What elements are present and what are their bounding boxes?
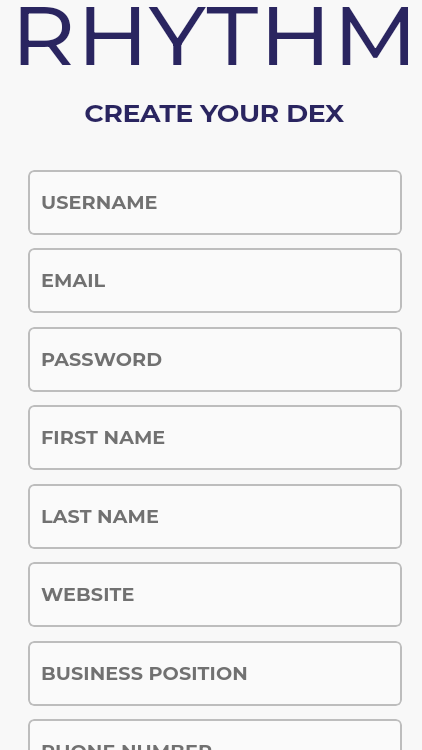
staticText: WEBSITE <box>41 584 135 606</box>
staticText: RHYTHM <box>11 0 419 86</box>
button[interactable]: USERNAME <box>28 170 402 235</box>
staticText: PASSWORD <box>41 349 163 371</box>
button[interactable]: PHONE NUMBER <box>28 719 402 750</box>
button[interactable]: LAST NAME <box>28 484 402 549</box>
button[interactable]: EMAIL <box>28 248 402 313</box>
staticText: EMAIL <box>41 270 106 292</box>
staticText: BUSINESS POSITION <box>41 663 248 685</box>
staticText: CREATE YOUR DEX <box>84 99 344 128</box>
button[interactable]: WEBSITE <box>28 562 402 627</box>
button[interactable]: FIRST NAME <box>28 405 402 470</box>
staticText: FIRST NAME <box>41 427 166 449</box>
button[interactable]: PASSWORD <box>28 327 402 392</box>
staticText: LAST NAME <box>41 506 160 528</box>
button[interactable]: BUSINESS POSITION <box>28 641 402 706</box>
staticText: USERNAME <box>41 192 158 214</box>
staticText: PHONE NUMBER <box>41 741 213 750</box>
